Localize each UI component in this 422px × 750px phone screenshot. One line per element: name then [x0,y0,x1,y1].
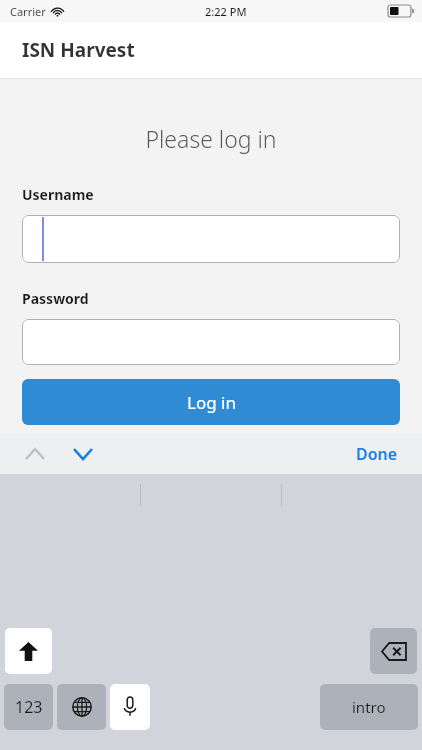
button[interactable]: 123 [4,684,53,730]
button[interactable]: Next field [66,437,100,471]
staticText: Log in [187,391,236,414]
button[interactable]: Key [370,628,417,674]
button[interactable] [22,319,400,365]
button[interactable]: intro [320,684,418,730]
button[interactable]: Key [5,628,52,674]
button[interactable]: Previous field [18,437,52,471]
button[interactable]: Key [57,684,106,730]
button[interactable]: Key [110,684,150,730]
staticText: Done [356,443,398,465]
staticText: Please log in [0,123,422,154]
staticText: Password [22,289,89,308]
staticText: 123 [15,696,43,718]
button[interactable] [22,215,400,263]
staticText: Username [22,185,94,204]
staticText: ISN Harvest [22,37,135,63]
staticText: Carrier [10,4,46,19]
button[interactable]: Done [350,437,404,471]
staticText: 2:22 PM [205,4,247,19]
staticText: intro [352,697,386,717]
button[interactable]: Log in [22,379,400,425]
